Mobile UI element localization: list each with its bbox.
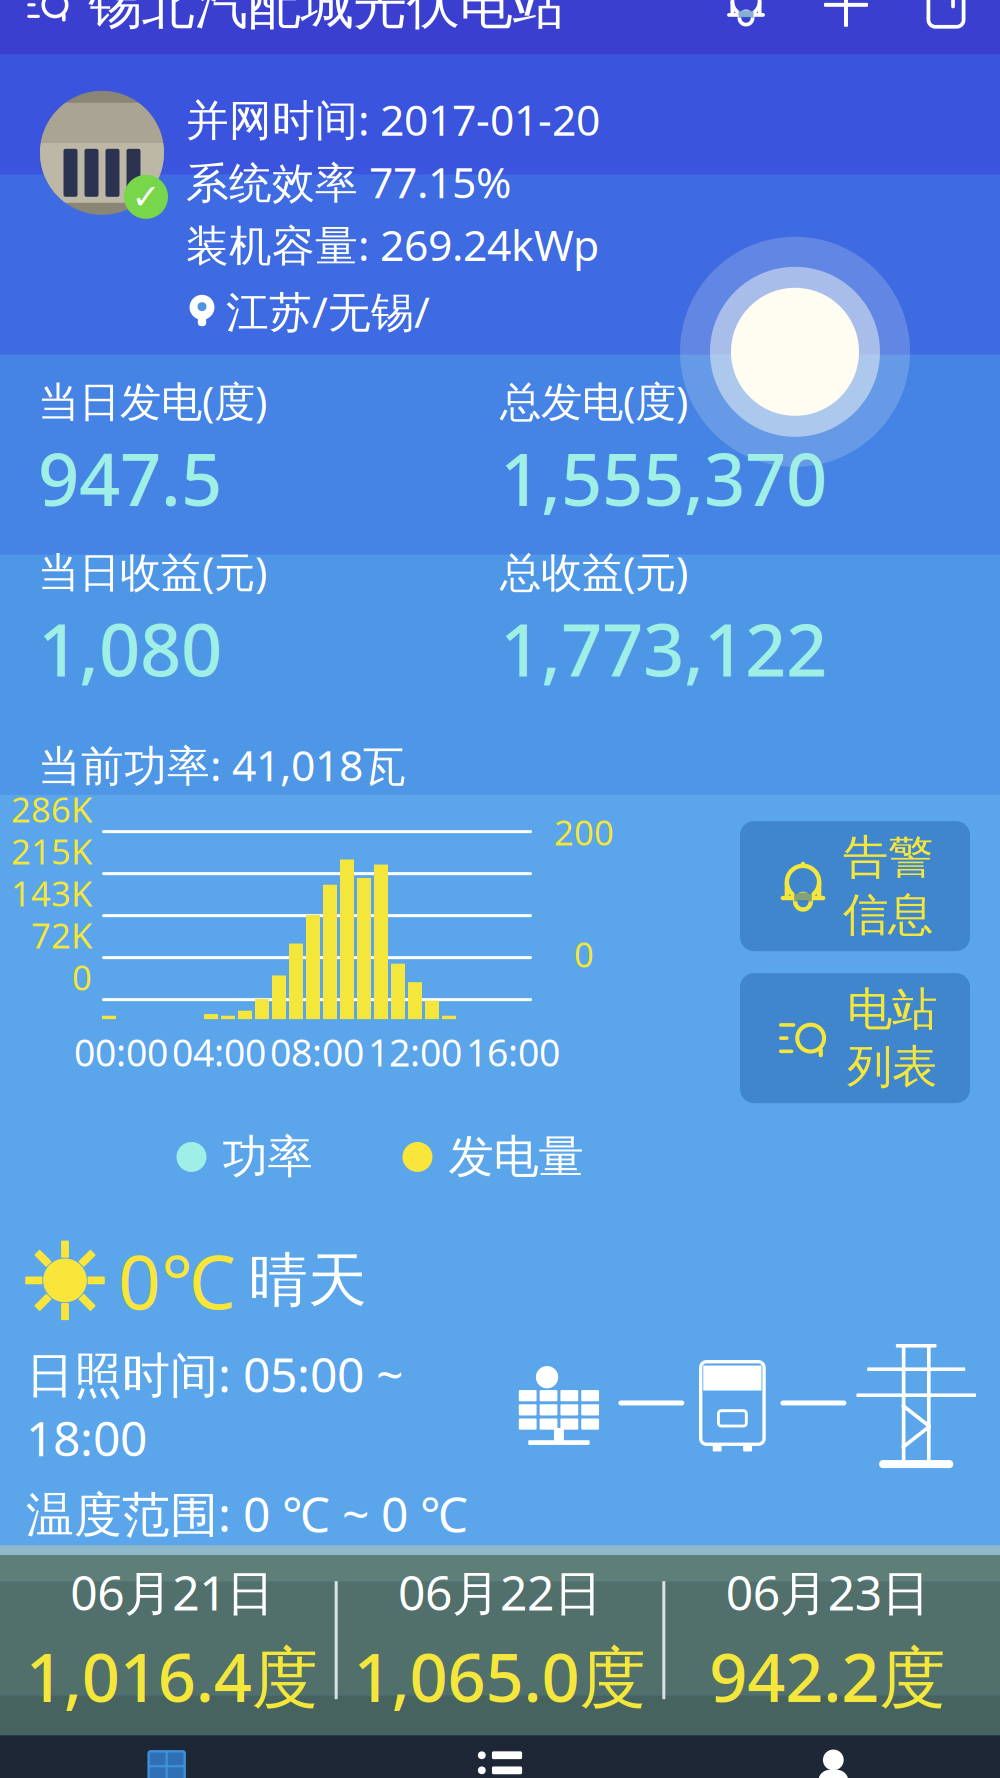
staticText: 总发电(度)	[500, 373, 688, 428]
staticText: 06月23日	[726, 1560, 930, 1624]
staticText: 装机容量: 269.24kWp	[186, 216, 599, 273]
staticText: ✓	[131, 177, 160, 216]
staticText: 当日发电(度)	[38, 373, 267, 428]
button[interactable]: 电站	[0, 1730, 333, 1778]
staticText: 告警	[843, 829, 933, 885]
staticText: 16:00	[466, 1027, 560, 1077]
staticText: 总收益(元)	[500, 544, 688, 599]
staticText: 信息	[843, 887, 933, 943]
staticText: 锡北汽配城光伏电站	[88, 0, 565, 38]
staticText: 06月22日	[398, 1560, 602, 1624]
staticText: 1,065.0度	[353, 1632, 646, 1720]
staticText: 1,016.4度	[26, 1632, 319, 1720]
staticText: 04:00	[172, 1027, 266, 1077]
staticText: 286K	[11, 786, 92, 832]
staticText: 06月21日	[70, 1560, 274, 1624]
button[interactable]: Share	[918, 0, 974, 33]
button[interactable]: 我的	[667, 1730, 1000, 1778]
button[interactable]: 设备	[333, 1730, 667, 1778]
staticText: 功率	[222, 1129, 312, 1185]
staticText: 0	[574, 931, 594, 977]
staticText: 0	[72, 954, 92, 1000]
staticText: 0℃	[118, 1231, 235, 1330]
staticText: 215K	[11, 828, 92, 874]
staticText: 1,773,122	[500, 601, 827, 696]
button[interactable]: Notifications	[718, 0, 774, 33]
staticText: 1,080	[38, 601, 222, 696]
staticText: 并网时间: 2017-01-20	[186, 91, 600, 147]
staticText: 当前功率: 41,018瓦	[38, 736, 406, 793]
button[interactable]: 告警	[740, 821, 970, 951]
staticText: 143K	[11, 870, 92, 916]
staticText: 00:00	[74, 1027, 168, 1077]
staticText: 温度范围: 0 ℃ ~ 0 ℃	[26, 1481, 468, 1545]
staticText: 日照时间: 05:00 ~ 18:00	[26, 1342, 403, 1469]
staticText: 列表	[847, 1039, 937, 1095]
staticText: 发电量	[448, 1129, 583, 1185]
button[interactable]: 电站	[740, 973, 970, 1103]
button[interactable]: Add	[818, 0, 874, 33]
staticText: 晴天	[249, 1244, 367, 1316]
staticText: 江苏/无锡/	[226, 283, 430, 339]
staticText: 200	[554, 809, 614, 855]
staticText: 942.2度	[709, 1632, 946, 1720]
staticText: 当日收益(元)	[38, 544, 267, 599]
staticText: 电站	[847, 981, 937, 1037]
button[interactable]: 锡北汽配城光伏电站	[0, 0, 565, 48]
staticText: 12:00	[368, 1027, 462, 1077]
staticText: 08:00	[270, 1027, 364, 1077]
staticText: 72K	[31, 912, 92, 958]
staticText: 947.5	[38, 430, 222, 526]
staticText: 系统效率 77.15%	[186, 153, 511, 210]
staticText: 1,555,370	[500, 430, 827, 526]
